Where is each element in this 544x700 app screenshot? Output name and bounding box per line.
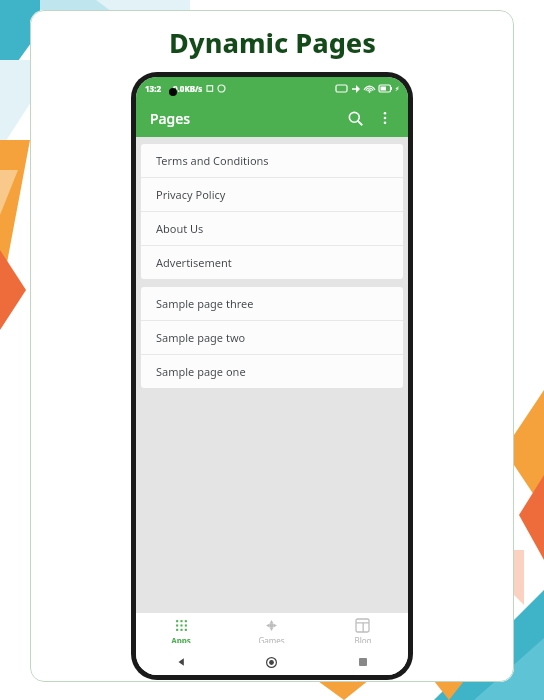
staticText: 13:2: [145, 83, 161, 94]
button[interactable]: Terms and Conditions: [141, 144, 403, 178]
button[interactable]: Privacy Policy: [141, 178, 403, 212]
button[interactable]: Home: [226, 649, 317, 675]
staticText: About Us: [156, 221, 204, 236]
button[interactable]: Sample page one: [141, 355, 403, 388]
staticText: Pages: [150, 109, 191, 128]
button[interactable]: Recents: [317, 649, 408, 675]
button[interactable]: Search: [340, 103, 370, 133]
button[interactable]: Back: [136, 649, 226, 675]
staticText: Blog: [354, 635, 372, 643]
button[interactable]: Games: [226, 613, 317, 649]
staticText: Advertisement: [156, 255, 232, 270]
button[interactable]: About Us: [141, 212, 403, 246]
staticText: Dynamic Pages: [169, 24, 376, 61]
staticText: Apps: [171, 635, 191, 643]
staticText: Privacy Policy: [156, 187, 226, 202]
staticText: 0.0KB/s: [173, 83, 203, 94]
button[interactable]: Apps: [136, 613, 226, 649]
button[interactable]: Sample page two: [141, 321, 403, 355]
staticText: ⚡: [395, 85, 400, 92]
staticText: Games: [258, 635, 285, 643]
button[interactable]: Blog: [317, 613, 408, 649]
button[interactable]: Advertisement: [141, 246, 403, 279]
staticText: Sample page two: [156, 330, 246, 345]
staticText: Sample page three: [156, 296, 254, 311]
button[interactable]: More options: [370, 103, 400, 133]
button[interactable]: Sample page three: [141, 287, 403, 321]
staticText: Terms and Conditions: [156, 153, 269, 168]
staticText: Sample page one: [156, 364, 246, 379]
